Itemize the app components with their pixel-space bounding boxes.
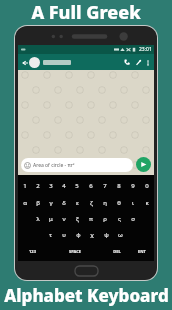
staticText: δ (62, 199, 66, 207)
staticText: ω (118, 231, 123, 239)
staticText: θ (117, 199, 121, 207)
button[interactable]: υ (57, 227, 71, 243)
staticText: Area of circle - πr² (33, 162, 75, 169)
button[interactable]: ψ (99, 227, 113, 243)
button[interactable]: ρ (98, 211, 112, 227)
staticText: ξ (76, 215, 79, 223)
button[interactable]: SPACE (46, 243, 104, 259)
staticText: μ (49, 215, 53, 223)
button[interactable]: η (98, 194, 112, 211)
staticText: Alphabet Keyboard (4, 284, 169, 307)
staticText: 4 (62, 182, 66, 190)
button[interactable]: χ (85, 227, 99, 243)
staticText: 9 (131, 182, 135, 190)
button[interactable]: Area of circle - πr² (21, 158, 133, 172)
button[interactable]: γ (44, 194, 57, 211)
button[interactable]: 2 (31, 177, 44, 194)
staticText: ψ (104, 231, 109, 239)
button[interactable]: σ (126, 211, 140, 227)
button[interactable]: 0 (140, 177, 154, 194)
staticText: β (36, 199, 40, 207)
button[interactable]: φ (71, 227, 85, 243)
button[interactable]: α (18, 194, 31, 211)
staticText: 123 (29, 249, 36, 254)
staticText: 0 (145, 182, 149, 190)
staticText: υ (62, 231, 66, 239)
button[interactable]: Attach (133, 57, 143, 67)
staticText: ζ (90, 199, 93, 207)
staticText: η (103, 199, 107, 207)
button[interactable]: 9 (126, 177, 140, 194)
button[interactable]: 1 (18, 177, 31, 194)
button[interactable]: ENT (130, 243, 154, 259)
staticText: 6 (89, 182, 93, 190)
button[interactable]: 5 (70, 177, 84, 194)
button[interactable]: π (84, 211, 98, 227)
button[interactable]: 4 (57, 177, 70, 194)
button[interactable]: τ (44, 227, 57, 243)
button[interactable]: ι (126, 194, 140, 211)
button[interactable]: β (31, 194, 44, 211)
button[interactable]: Back (20, 58, 29, 67)
button[interactable]: ξ (70, 211, 84, 227)
staticText: A Full Greek (31, 0, 141, 25)
staticText: 1 (23, 182, 27, 190)
button[interactable]: μ (44, 211, 57, 227)
staticText: 7 (103, 182, 107, 190)
staticText: ν (62, 215, 66, 223)
staticText: ι (132, 199, 134, 207)
button[interactable]: κ (140, 194, 154, 211)
staticText: ε (76, 199, 79, 207)
button[interactable]: More options (143, 58, 152, 67)
button[interactable]: δ (57, 194, 70, 211)
button[interactable]: Call (122, 57, 132, 67)
staticText: τ (49, 231, 52, 239)
button[interactable]: Home (75, 266, 98, 276)
staticText: DEL (113, 249, 121, 254)
button[interactable]: 3 (44, 177, 57, 194)
staticText: φ (76, 231, 81, 239)
staticText: 2 (36, 182, 40, 190)
button[interactable]: Send (136, 157, 151, 172)
button[interactable]: ε (70, 194, 84, 211)
button[interactable]: 123 (18, 243, 46, 259)
staticText: 3 (49, 182, 53, 190)
button[interactable]: ν (57, 211, 70, 227)
staticText: 5 (75, 182, 79, 190)
staticText: λ (36, 215, 40, 223)
button[interactable]: ω (113, 227, 127, 243)
staticText: 8 (117, 182, 121, 190)
staticText: 23:01 (139, 46, 152, 53)
button[interactable]: Contact photo (29, 57, 40, 68)
button[interactable]: ζ (84, 194, 98, 211)
staticText: σ (131, 215, 135, 223)
button[interactable]: DEL (104, 243, 130, 259)
button[interactable]: 6 (84, 177, 98, 194)
button[interactable]: λ (31, 211, 44, 227)
button[interactable]: 8 (112, 177, 126, 194)
staticText: α (23, 199, 27, 207)
button[interactable]: ς (112, 211, 126, 227)
button[interactable]: θ (112, 194, 126, 211)
button[interactable]: 7 (98, 177, 112, 194)
staticText: ρ (103, 215, 107, 223)
staticText: ς (118, 215, 121, 223)
staticText: κ (145, 199, 149, 207)
staticText: SPACE (69, 249, 81, 254)
staticText: π (89, 215, 93, 223)
staticText: ENT (138, 249, 146, 254)
staticText: γ (49, 199, 53, 207)
staticText: χ (90, 231, 94, 239)
